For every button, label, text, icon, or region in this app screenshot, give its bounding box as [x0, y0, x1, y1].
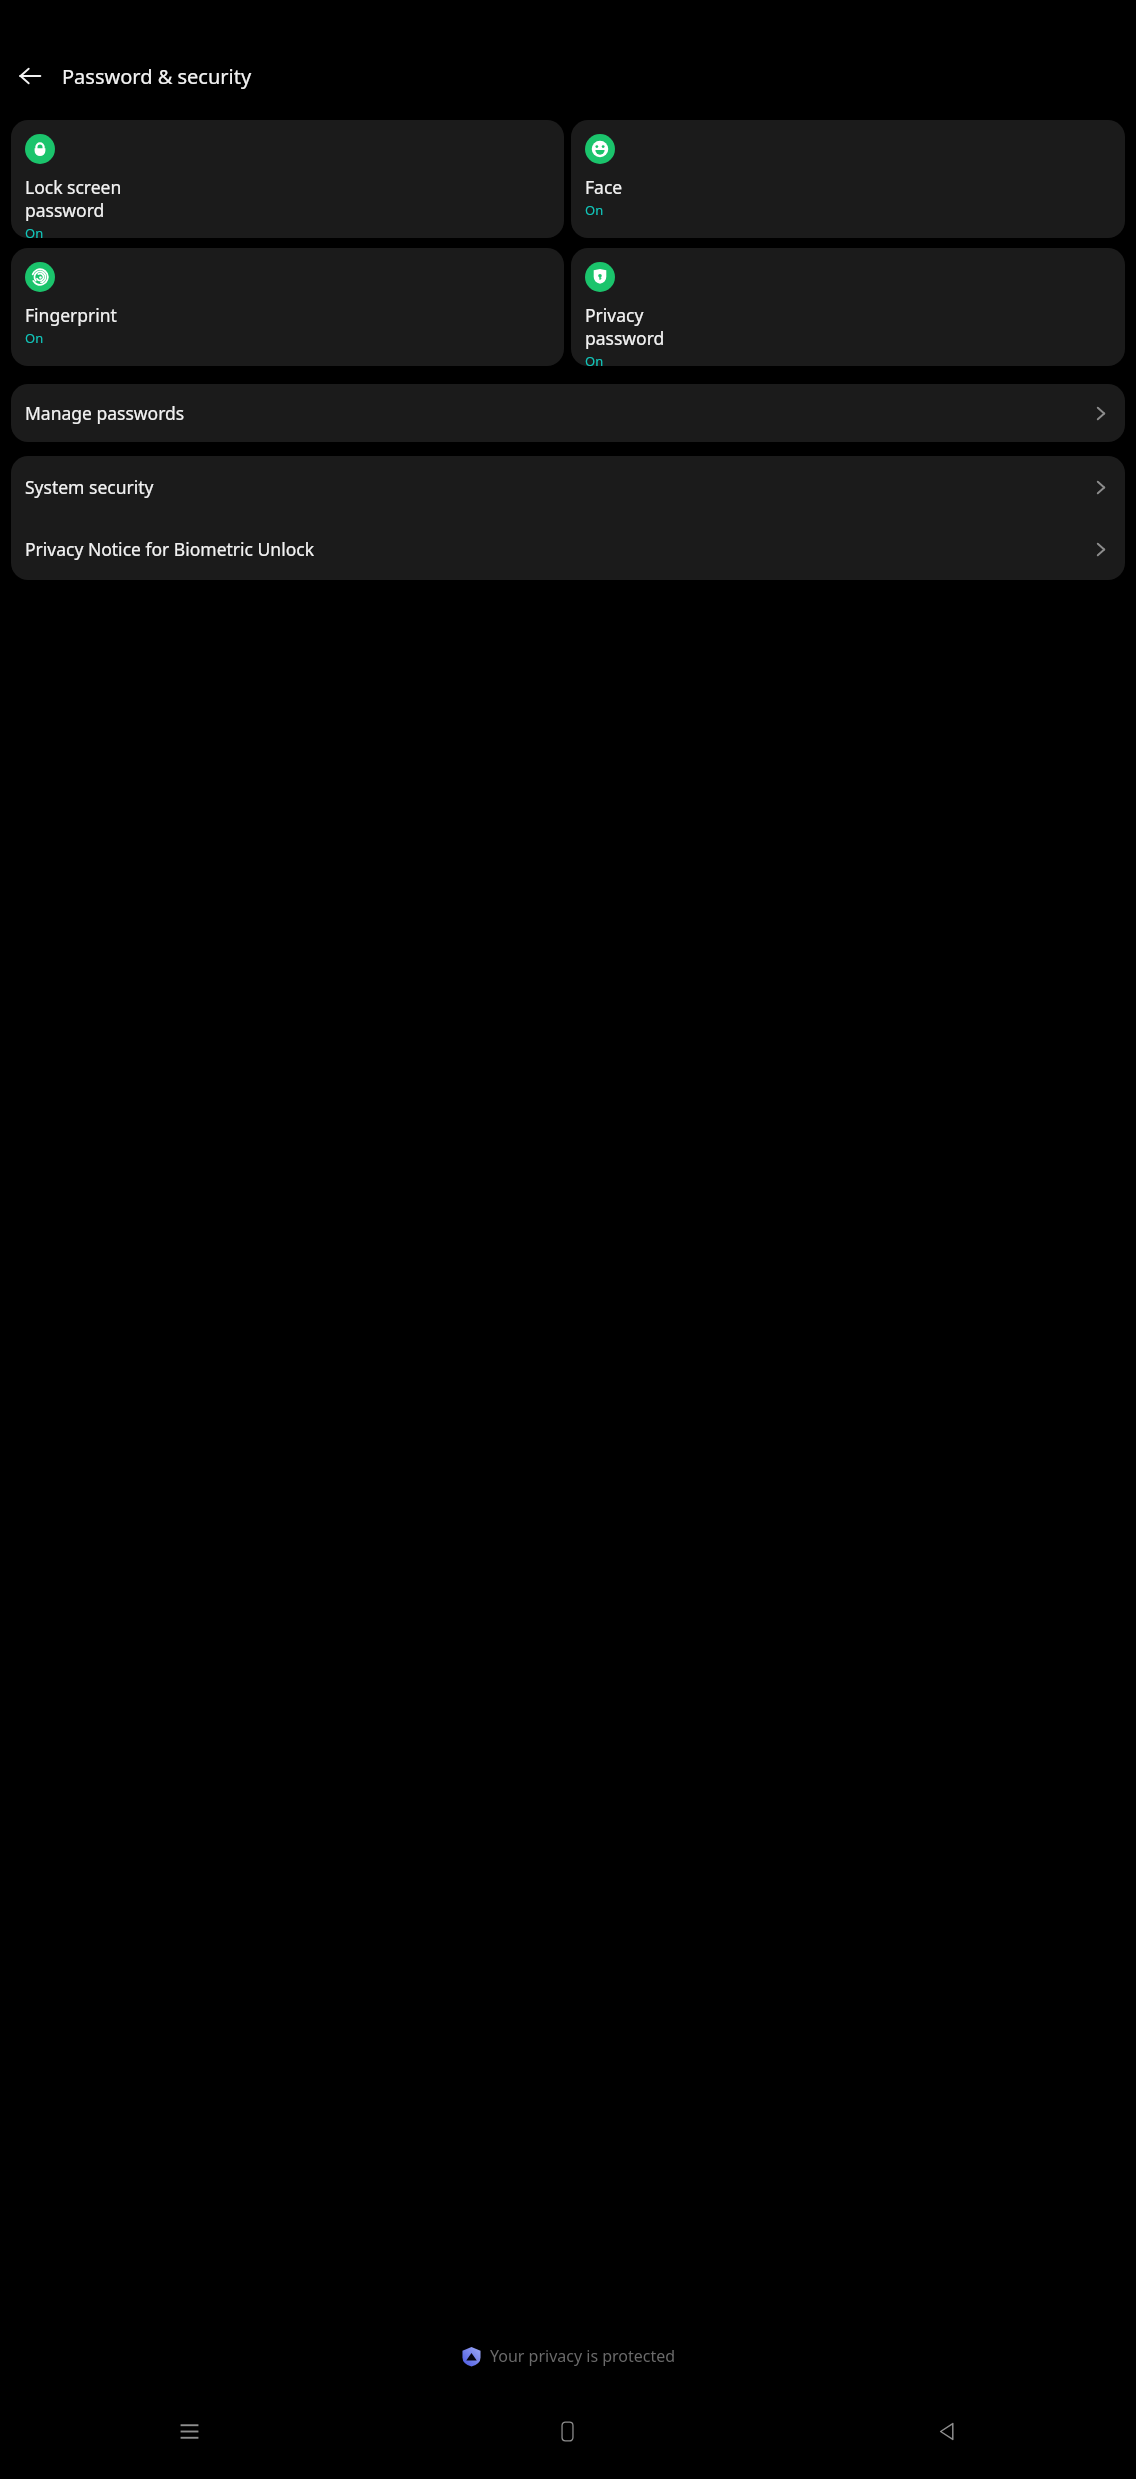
- staticText: On: [585, 352, 604, 366]
- staticText: On: [25, 224, 44, 238]
- button[interactable]: Privacy password: [571, 248, 1125, 366]
- staticText: Lock screen password: [25, 175, 122, 222]
- button[interactable]: Recent apps: [0, 2411, 378, 2451]
- staticText: Your privacy is protected: [490, 2345, 676, 2367]
- staticText: Fingerprint: [25, 303, 117, 327]
- button[interactable]: Back: [757, 2411, 1136, 2451]
- staticText: Face: [585, 175, 623, 199]
- button[interactable]: Privacy Notice for Biometric Unlock: [11, 518, 1125, 580]
- staticText: Privacy Notice for Biometric Unlock: [25, 537, 1092, 561]
- staticText: On: [585, 201, 604, 219]
- button[interactable]: System security: [11, 456, 1125, 518]
- staticText: On: [25, 329, 44, 347]
- button[interactable]: Back: [10, 56, 50, 96]
- staticText: Privacy password: [585, 303, 665, 350]
- button[interactable]: Lock screen password: [11, 120, 564, 238]
- staticText: System security: [25, 475, 1092, 499]
- button[interactable]: Fingerprint: [11, 248, 564, 366]
- button[interactable]: Manage passwords: [11, 384, 1125, 442]
- staticText: Manage passwords: [25, 401, 1092, 425]
- button[interactable]: Face: [571, 120, 1125, 238]
- staticText: Password & security: [62, 63, 252, 90]
- button[interactable]: Home: [378, 2411, 757, 2451]
